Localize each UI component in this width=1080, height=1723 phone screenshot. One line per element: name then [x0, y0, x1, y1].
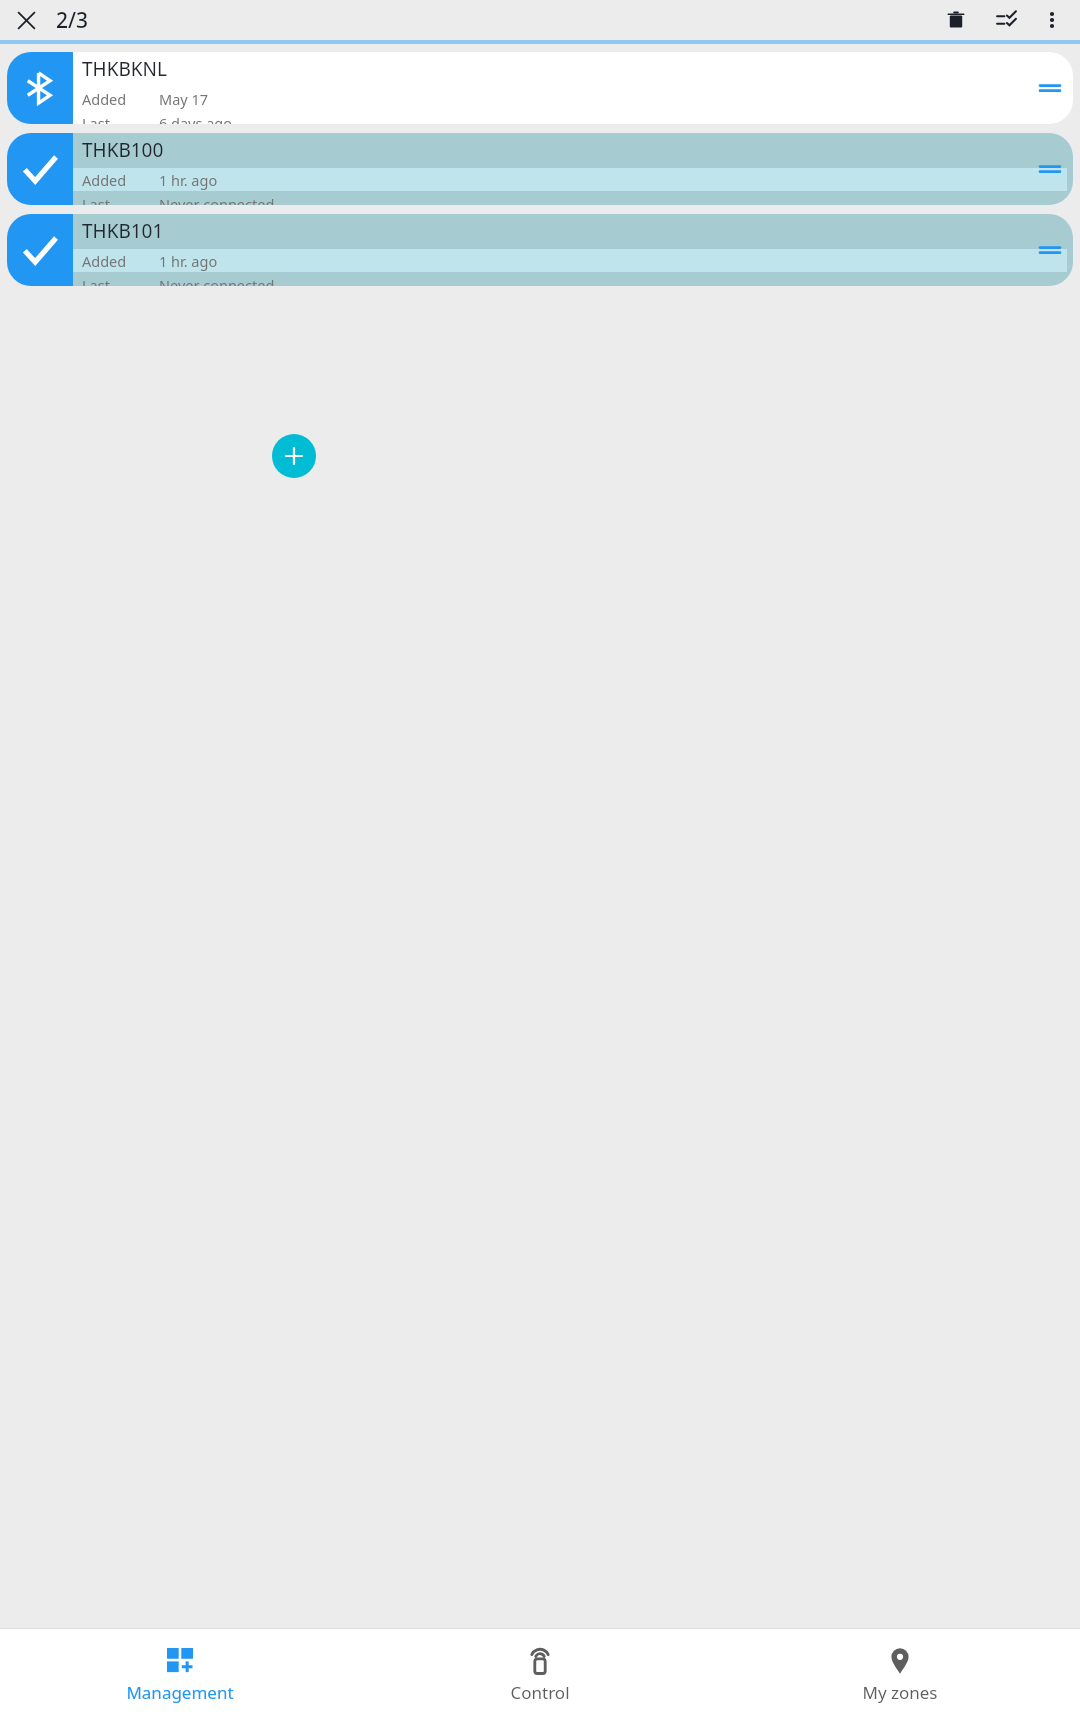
button[interactable]: Reorder	[1033, 233, 1067, 267]
button[interactable]: Reorder	[1033, 152, 1067, 186]
staticText: Added	[82, 170, 159, 190]
staticText: 1 hr. ago	[159, 251, 218, 271]
staticText: Never connected	[159, 194, 275, 205]
button[interactable]: THKB101	[7, 214, 1073, 286]
staticText: THKB101	[82, 218, 164, 244]
staticText: 2/3	[56, 6, 89, 35]
button[interactable]: Reorder	[1033, 71, 1067, 105]
button[interactable]: Control	[360, 1629, 720, 1723]
button[interactable]: THKB100	[7, 133, 1073, 205]
staticText: Management	[126, 1681, 234, 1704]
button[interactable]: Close	[6, 0, 46, 40]
staticText: 6 days ago	[159, 113, 233, 124]
staticText: THKBKNL	[82, 56, 167, 82]
staticText: 1 hr. ago	[159, 170, 218, 190]
button[interactable]: Select all	[986, 0, 1026, 40]
button[interactable]: My zones	[720, 1629, 1080, 1723]
staticText: Last connection	[82, 275, 159, 286]
staticText: Added	[82, 251, 159, 271]
staticText: May 17	[159, 89, 209, 109]
staticText: THKB100	[82, 137, 164, 163]
button[interactable]: Add device	[272, 434, 316, 478]
staticText: Added	[82, 89, 159, 109]
staticText: My zones	[862, 1681, 938, 1704]
staticText: Control	[510, 1681, 570, 1704]
button[interactable]: More options	[1032, 0, 1072, 40]
staticText: Never connected	[159, 275, 275, 286]
button[interactable]: Management	[0, 1629, 360, 1723]
staticText: Last connection	[82, 194, 159, 205]
staticText: Last connection	[82, 113, 159, 124]
button[interactable]: THKBKNL	[7, 52, 1073, 124]
button[interactable]: Delete	[936, 0, 976, 40]
